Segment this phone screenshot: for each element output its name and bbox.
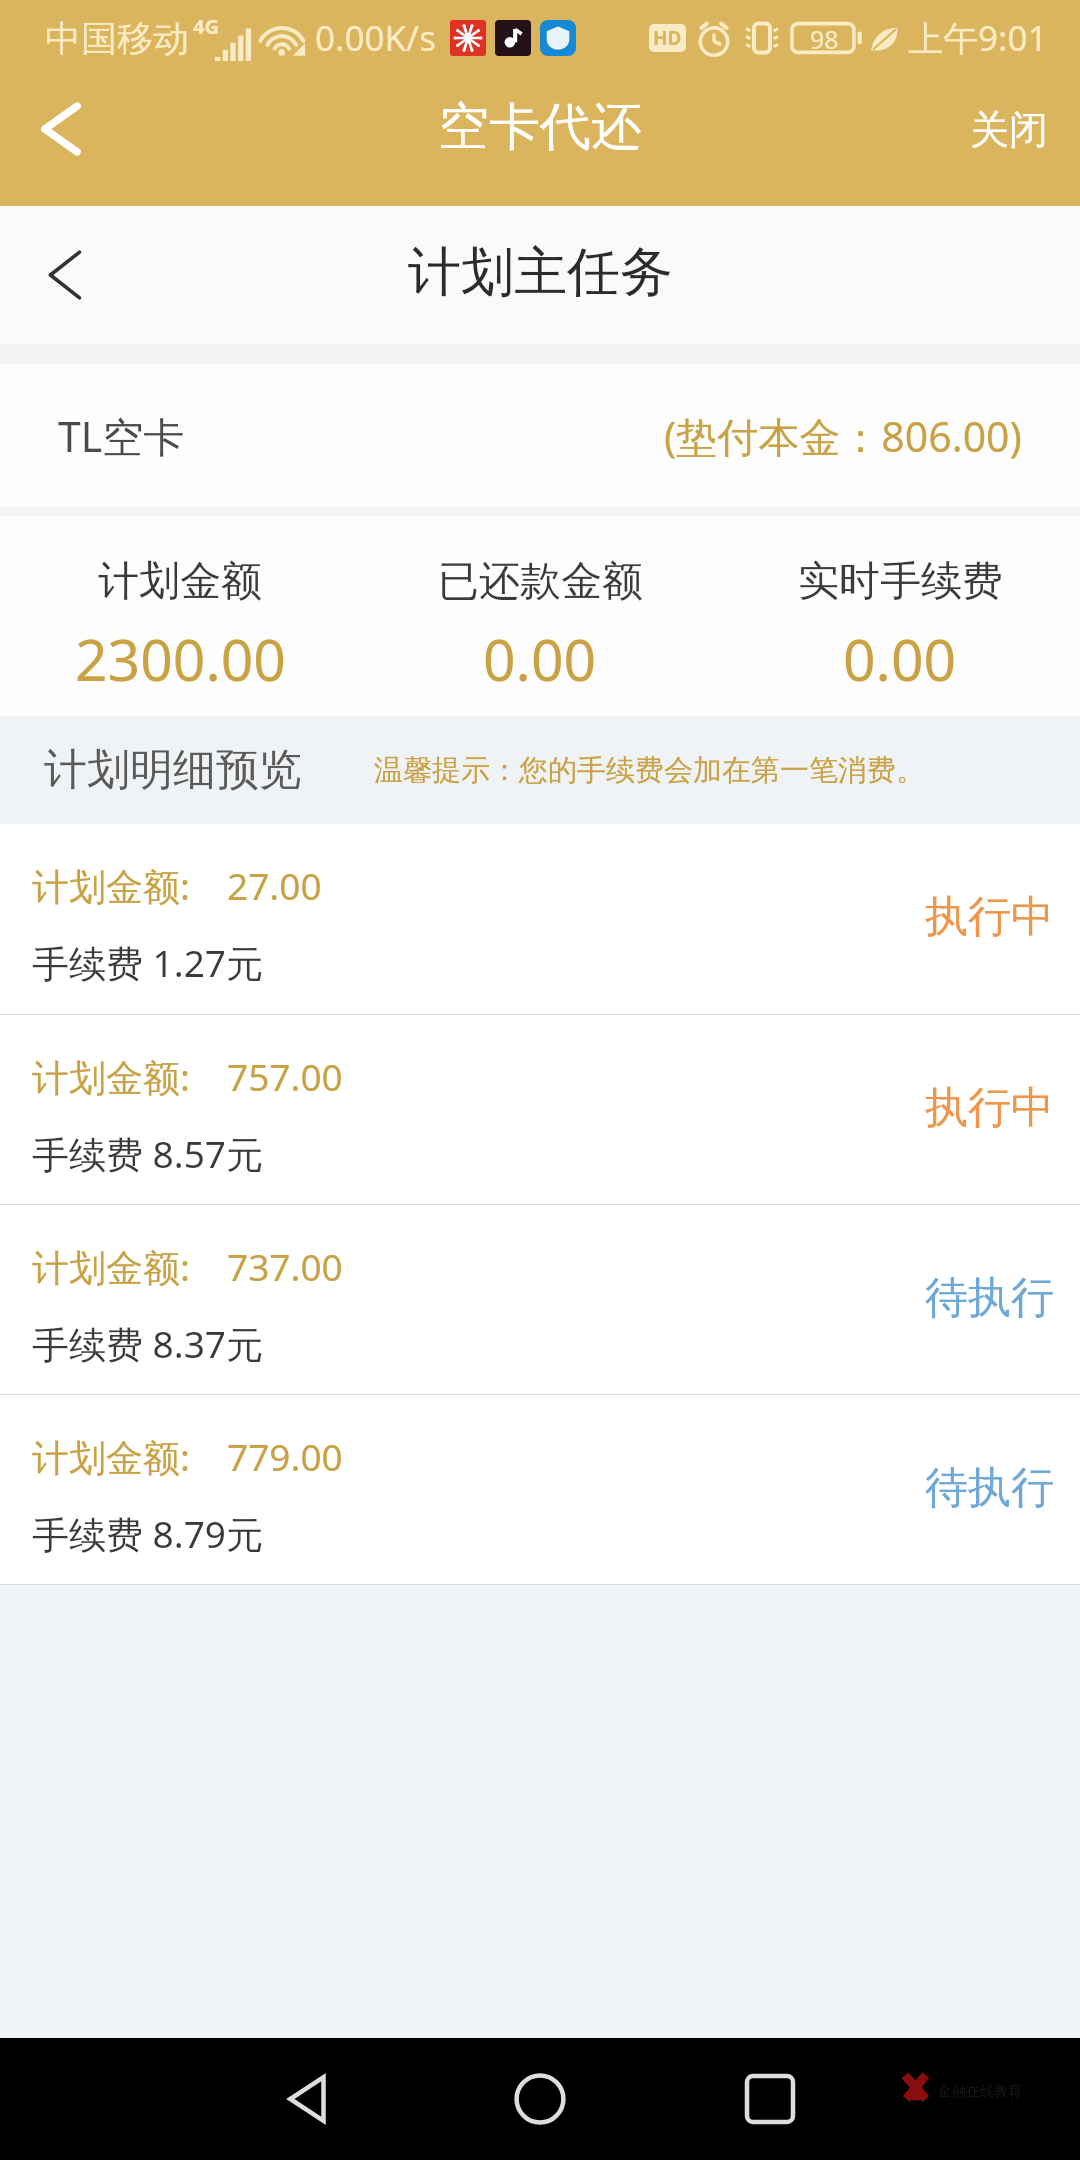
- staticText: 0.00K/s: [315, 14, 436, 62]
- staticText: 手续费 1.27元: [32, 937, 264, 988]
- button[interactable]: 计划金额:: [0, 1015, 1080, 1204]
- staticText: 中国移动: [45, 16, 189, 61]
- staticText: 执行中: [925, 1081, 1054, 1135]
- staticText: 计划金额: [98, 556, 262, 608]
- staticText: HD: [653, 25, 682, 51]
- staticText: 0.00: [483, 620, 597, 698]
- staticText: 执行中: [925, 890, 1054, 944]
- staticText: 温馨提示：您的手续费会加在第一笔消费。: [374, 752, 925, 789]
- button[interactable]: 计划金额:: [0, 1395, 1080, 1584]
- staticText: 779.00: [227, 1431, 343, 1481]
- button[interactable]: Recents: [720, 2049, 820, 2149]
- button[interactable]: Back: [18, 228, 112, 322]
- staticText: (垫付本金：806.00): [664, 408, 1022, 464]
- staticText: 0.00: [843, 620, 957, 698]
- staticText: 待执行: [925, 1271, 1054, 1325]
- staticText: 计划金额:: [32, 1241, 190, 1292]
- button[interactable]: Back: [260, 2049, 360, 2149]
- staticText: 757.00: [227, 1051, 343, 1101]
- staticText: 计划主任务: [408, 239, 673, 306]
- staticText: 计划金额:: [32, 1431, 190, 1482]
- button[interactable]: 计划金额:: [0, 1205, 1080, 1394]
- staticText: 737.00: [227, 1241, 343, 1291]
- staticText: 实时手续费: [798, 556, 1003, 608]
- staticText: 计划明细预览: [44, 743, 302, 797]
- staticText: 关闭: [970, 105, 1048, 154]
- staticText: 2300.00: [75, 620, 286, 698]
- staticText: 待执行: [925, 1461, 1054, 1515]
- staticText: 98: [810, 22, 839, 54]
- button[interactable]: TL空卡: [0, 364, 1080, 507]
- staticText: 已还款金额: [438, 556, 643, 608]
- staticText: 手续费 8.57元: [32, 1128, 264, 1179]
- button[interactable]: 返回: [14, 82, 108, 176]
- staticText: TL空卡: [58, 408, 185, 464]
- button[interactable]: Home: [490, 2049, 590, 2149]
- staticText: 27.00: [227, 860, 322, 910]
- staticText: 计划金额:: [32, 860, 190, 911]
- staticText: 金融在线教育: [938, 2083, 1022, 2101]
- staticText: 计划金额:: [32, 1051, 190, 1102]
- staticText: 4G: [193, 13, 219, 40]
- staticText: 上午9:01: [908, 14, 1048, 62]
- button[interactable]: 计划金额:: [0, 824, 1080, 1014]
- staticText: 空卡代还: [438, 95, 642, 159]
- button[interactable]: 关闭: [938, 83, 1080, 176]
- staticText: 手续费 8.37元: [32, 1318, 264, 1369]
- staticText: 手续费 8.79元: [32, 1508, 264, 1559]
